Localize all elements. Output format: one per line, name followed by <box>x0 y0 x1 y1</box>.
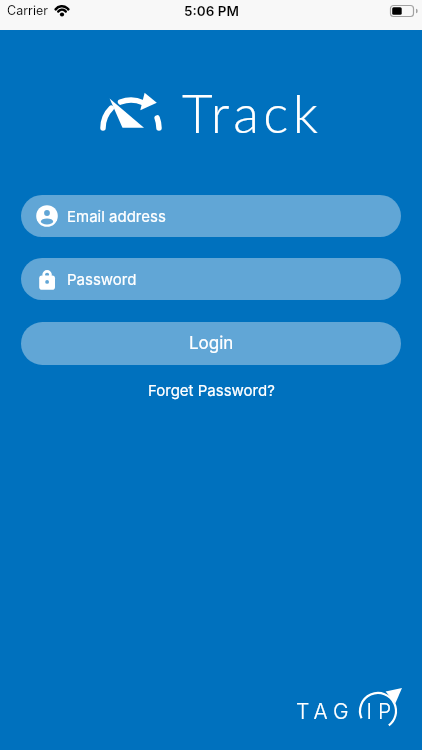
staticText: Email address <box>67 207 166 225</box>
staticText: Password <box>67 270 137 288</box>
staticText: 5:06 PM <box>184 3 239 19</box>
button[interactable]: Forget Password? <box>148 381 275 399</box>
staticText: Carrier <box>7 3 48 18</box>
staticText: Track <box>182 81 323 145</box>
staticText: Login <box>189 333 234 354</box>
button[interactable]: Email address <box>21 195 401 237</box>
button[interactable]: Password <box>21 258 401 300</box>
staticText: TAG IP <box>296 699 398 724</box>
button[interactable]: Login <box>21 322 401 365</box>
